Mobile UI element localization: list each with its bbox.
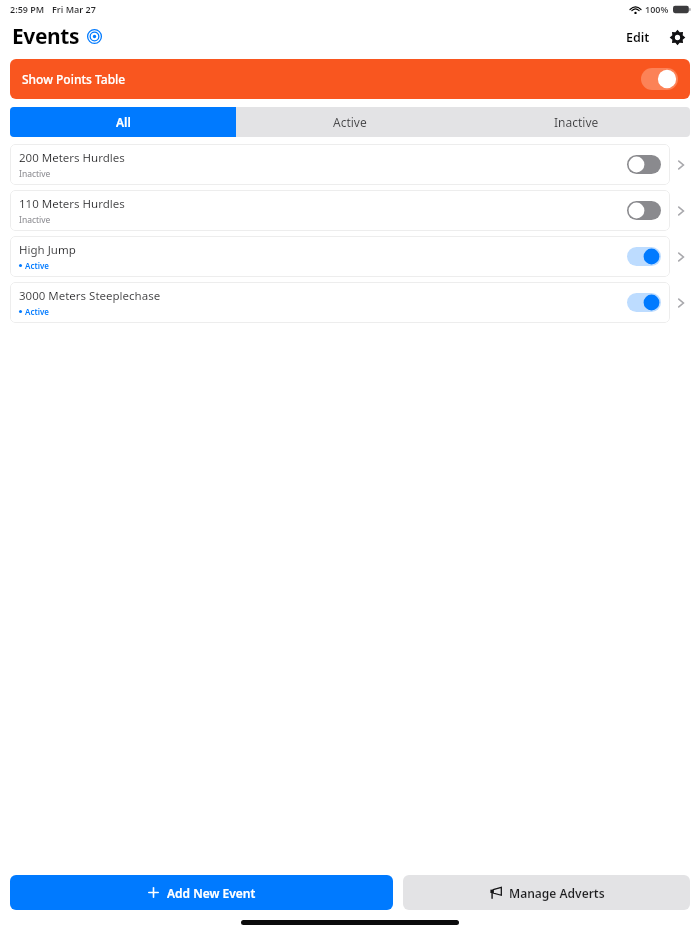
staticText: Add New Event xyxy=(167,885,256,901)
button[interactable]: Show Points Table xyxy=(10,59,690,99)
button[interactable]: Open High Jump xyxy=(670,236,692,277)
staticText: High Jump xyxy=(19,242,76,258)
staticText: Inactive xyxy=(19,214,51,226)
button[interactable]: 200 Meters Hurdles xyxy=(10,144,670,185)
staticText: Show Points Table xyxy=(22,71,126,87)
staticText: All xyxy=(116,114,131,130)
button[interactable]: High Jump xyxy=(10,236,670,277)
button[interactable]: 3000 Meters Steeplechase xyxy=(10,282,670,323)
staticText: Manage Adverts xyxy=(509,885,605,901)
button[interactable]: Active xyxy=(236,107,463,137)
button[interactable]: All xyxy=(10,107,236,137)
button[interactable]: Open 200 Meters Hurdles xyxy=(670,144,692,185)
staticText: Edit xyxy=(626,29,650,46)
staticText: Inactive xyxy=(554,114,599,130)
staticText: 2:59 PM xyxy=(10,3,45,15)
staticText: Inactive xyxy=(19,168,51,180)
staticText: Events xyxy=(12,22,80,51)
staticText: Active xyxy=(333,114,367,130)
staticText: 200 Meters Hurdles xyxy=(19,150,125,166)
staticText: Fri Mar 27 xyxy=(52,3,96,15)
staticText: 3000 Meters Steeplechase xyxy=(19,288,161,304)
staticText: Active xyxy=(25,260,49,271)
button[interactable]: Edit xyxy=(623,26,653,49)
button[interactable]: Inactive xyxy=(463,107,690,137)
button[interactable]: Settings xyxy=(664,24,690,50)
staticText: Active xyxy=(25,306,49,317)
button[interactable]: Open 3000 Meters Steeplechase xyxy=(670,282,692,323)
staticText: 100% xyxy=(645,3,669,15)
staticText: 110 Meters Hurdles xyxy=(19,196,125,212)
button[interactable]: Add New Event xyxy=(10,875,393,910)
button[interactable]: Manage Adverts xyxy=(403,875,690,910)
button[interactable]: 110 Meters Hurdles xyxy=(10,190,670,231)
button[interactable]: Open 110 Meters Hurdles xyxy=(670,190,692,231)
